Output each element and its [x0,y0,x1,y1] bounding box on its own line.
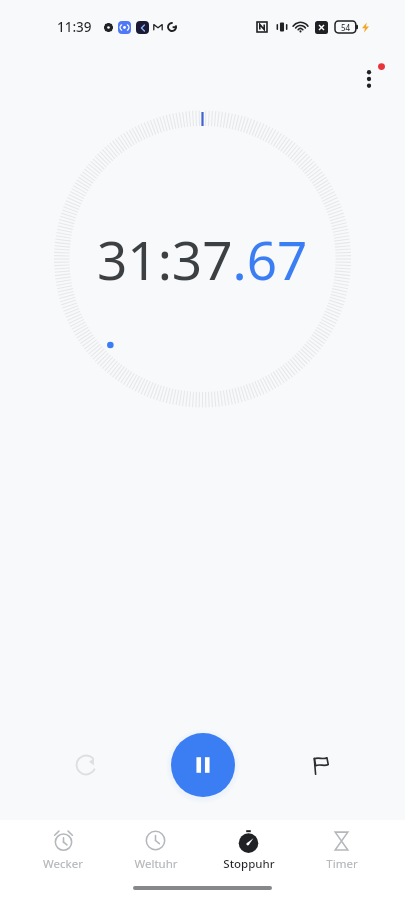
staticText: Wecker [43,856,83,872]
button[interactable]: More options [345,55,393,103]
button[interactable]: Timer [295,820,388,876]
button[interactable]: Weltuhr [109,820,202,876]
staticText: 54 [341,22,351,33]
button[interactable]: Lap [296,741,344,789]
button[interactable]: Wecker [17,820,109,876]
staticText: 11:39 [57,18,92,36]
button[interactable]: Stoppuhr [202,820,295,876]
staticText: Timer [326,856,358,872]
button[interactable]: Pause [171,733,235,797]
staticText: Stoppuhr [223,856,275,872]
staticText: 31:37.67 [97,223,308,295]
button[interactable]: Reset [62,741,110,789]
staticText: Weltuhr [134,856,178,872]
